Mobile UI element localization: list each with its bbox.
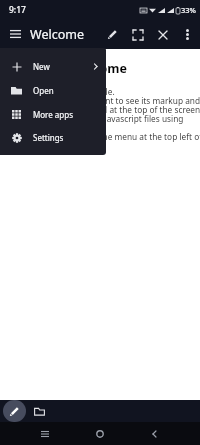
- staticText: 9:17: [9, 4, 26, 16]
- staticText: This is a sample file. Click on an eleme…: [37, 86, 200, 152]
- staticText: Welcome: [30, 26, 84, 43]
- button[interactable]: Fullscreen: [125, 22, 150, 47]
- button[interactable]: Edit: [3, 400, 26, 422]
- button[interactable]: Settings: [0, 126, 106, 149]
- button[interactable]: Close: [150, 22, 175, 47]
- staticText: Settings: [33, 132, 64, 143]
- staticText: Open: [33, 85, 54, 96]
- button[interactable]: Back: [145, 424, 165, 444]
- button[interactable]: More apps: [0, 102, 106, 126]
- button[interactable]: Edit: [100, 22, 125, 47]
- button[interactable]: Navigation menu: [0, 19, 30, 49]
- button[interactable]: Recent apps: [35, 424, 55, 444]
- staticText: New: [33, 61, 50, 72]
- button[interactable]: Home: [90, 424, 110, 444]
- button[interactable]: Open: [0, 78, 106, 102]
- staticText: More apps: [33, 109, 73, 120]
- button[interactable]: Open folder: [29, 401, 49, 421]
- button[interactable]: New: [0, 54, 106, 78]
- staticText: Welcome: [70, 60, 127, 77]
- staticText: 33%: [181, 5, 196, 15]
- button[interactable]: More options: [175, 22, 200, 47]
